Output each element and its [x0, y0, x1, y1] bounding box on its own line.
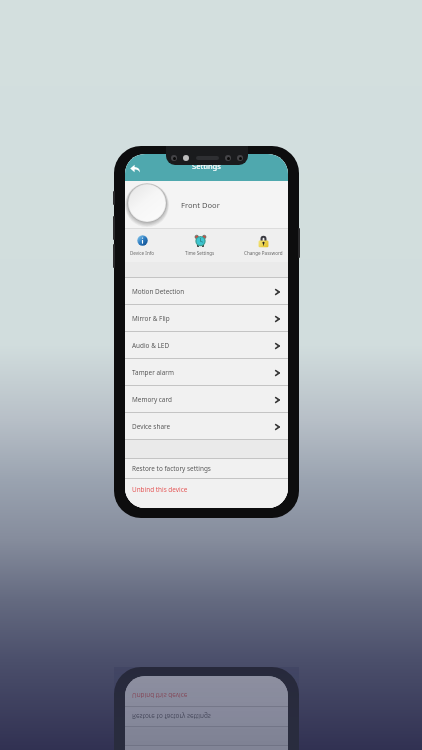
- staticText: Unbind this device: [132, 485, 188, 494]
- staticText: Audio & LED: [132, 341, 170, 350]
- button[interactable]: Back: [128, 161, 142, 175]
- button[interactable]: Audio & LED: [125, 332, 288, 359]
- button[interactable]: Motion Detection: [125, 278, 288, 305]
- staticText: Device share: [132, 422, 171, 431]
- button[interactable]: Mirror & Flip: [125, 305, 288, 332]
- staticText: Device Info: [130, 250, 155, 256]
- staticText: Restore to factory settings: [132, 464, 211, 473]
- button[interactable]: Memory card: [125, 386, 288, 413]
- staticText: Front Door: [181, 200, 220, 210]
- button[interactable]: Restore to factory settings: [125, 707, 288, 726]
- button[interactable]: Time Settings: [172, 229, 228, 262]
- button[interactable]: Change Password: [235, 229, 288, 262]
- staticText: Memory card: [132, 395, 172, 404]
- button[interactable]: Unbind this device: [125, 479, 288, 508]
- button[interactable]: Tamper alarm: [125, 359, 288, 386]
- button[interactable]: Device Info: [125, 229, 170, 262]
- button[interactable]: Front Door: [125, 181, 288, 229]
- staticText: Time Settings: [185, 250, 215, 256]
- staticText: Mirror & Flip: [132, 314, 170, 323]
- staticText: Unbind this device: [132, 691, 188, 700]
- button[interactable]: Device share: [125, 413, 288, 440]
- staticText: Motion Detection: [132, 287, 185, 296]
- button[interactable]: Restore to factory settings: [125, 459, 288, 478]
- staticText: Tamper alarm: [132, 368, 174, 377]
- staticText: Change Password: [244, 250, 283, 256]
- staticText: Settings: [192, 161, 221, 171]
- staticText: Restore to factory settings: [132, 712, 211, 721]
